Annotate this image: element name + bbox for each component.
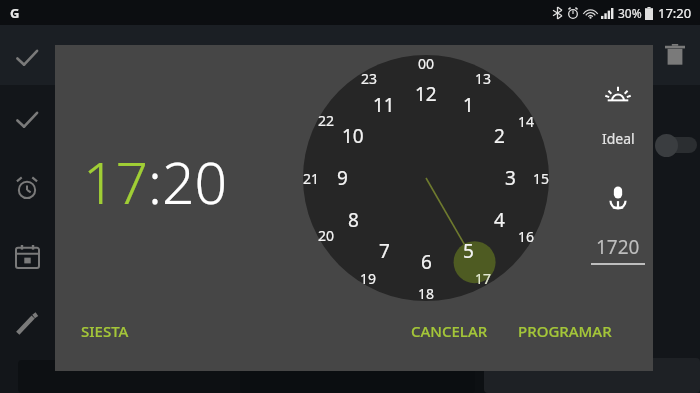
- staticText: 8: [348, 207, 359, 233]
- staticText: 7: [379, 238, 390, 264]
- staticText: 10: [342, 123, 364, 149]
- staticText: 4: [494, 207, 505, 233]
- button[interactable]: [240, 360, 475, 393]
- staticText: 17:20: [83, 143, 228, 221]
- staticText: 30%: [618, 5, 642, 21]
- staticText: 20: [318, 226, 335, 245]
- staticText: 9: [337, 165, 348, 191]
- staticText: 12: [415, 81, 437, 107]
- staticText: 17: [475, 269, 492, 288]
- staticText: 16: [518, 227, 535, 246]
- staticText: 19: [360, 269, 377, 288]
- staticText: 1720: [596, 234, 640, 260]
- staticText: 18: [418, 284, 435, 303]
- button[interactable]: 1720: [591, 234, 645, 265]
- staticText: 17:20: [658, 4, 692, 22]
- button[interactable]: Hour picker: [300, 52, 552, 304]
- staticText: 5: [463, 238, 474, 264]
- button[interactable]: Nav item 4: [5, 302, 49, 346]
- staticText: 21: [303, 169, 320, 188]
- button[interactable]: CANCELAR: [403, 313, 496, 349]
- button[interactable]: Nav item 3: [5, 234, 49, 278]
- button[interactable]: PROGRAMAR: [510, 313, 620, 349]
- staticText: 13: [475, 69, 492, 88]
- staticText: 1: [463, 92, 474, 118]
- button[interactable]: SIESTA: [73, 313, 137, 349]
- button[interactable]: Nav item 2: [5, 166, 49, 210]
- button[interactable]: Nav item 0: [5, 36, 49, 80]
- button[interactable]: [484, 358, 700, 393]
- staticText: 11: [373, 92, 395, 118]
- staticText: 00: [418, 54, 435, 73]
- button[interactable]: 17:20: [83, 143, 228, 221]
- staticText: 23: [361, 69, 378, 88]
- staticText: 14: [518, 112, 535, 131]
- staticText: SIESTA: [81, 321, 129, 341]
- button[interactable]: Sunrise brightness: [594, 73, 642, 121]
- staticText: 22: [318, 111, 335, 130]
- staticText: CANCELAR: [411, 321, 488, 341]
- staticText: 6: [421, 249, 432, 275]
- button[interactable]: Delete: [653, 33, 697, 77]
- button[interactable]: [18, 360, 513, 393]
- staticText: 3: [505, 165, 516, 191]
- button[interactable]: Toggle alarm: [655, 130, 700, 160]
- staticText: 2: [494, 123, 505, 149]
- staticText: PROGRAMAR: [518, 321, 612, 341]
- staticText: 15: [533, 169, 550, 188]
- staticText: G: [10, 4, 20, 22]
- button[interactable]: Nav item 1: [5, 98, 49, 142]
- button[interactable]: Voice input: [594, 174, 642, 222]
- staticText: Ideal: [602, 129, 635, 148]
